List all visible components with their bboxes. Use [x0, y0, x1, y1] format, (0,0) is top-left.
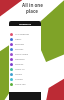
- button[interactable]: Gallery: [10, 72, 41, 77]
- staticText: Social Media: [15, 53, 28, 56]
- button[interactable]: Services: [10, 47, 41, 52]
- staticText: Feedback: [15, 58, 25, 61]
- staticText: Share App: [15, 83, 26, 86]
- staticText: Contact Us: [19, 22, 32, 25]
- button[interactable]: About Us: [10, 67, 41, 72]
- button[interactable]: Contact: [10, 77, 41, 82]
- button[interactable]: Social Media: [10, 52, 41, 57]
- staticText: Settings: [15, 63, 24, 66]
- button[interactable]: Offers: [10, 37, 41, 42]
- button[interactable]: Business: [10, 42, 41, 47]
- staticText: About Us: [15, 68, 25, 71]
- button[interactable]: Settings: [10, 62, 41, 67]
- staticText: Offers: [15, 38, 22, 41]
- button[interactable]: Feedback: [10, 57, 41, 62]
- button[interactable]: Share App: [10, 82, 41, 87]
- staticText: Gallery: [15, 73, 23, 76]
- staticText: All Categories: [15, 33, 30, 36]
- staticText: Services: [15, 48, 24, 51]
- staticText: All in one: [22, 2, 43, 8]
- staticText: Business: [15, 43, 25, 46]
- button[interactable]: Contact Us: [9, 21, 41, 26]
- button[interactable]: All Categories: [10, 32, 41, 37]
- staticText: place: [26, 8, 38, 14]
- staticText: Contact: [15, 78, 23, 81]
